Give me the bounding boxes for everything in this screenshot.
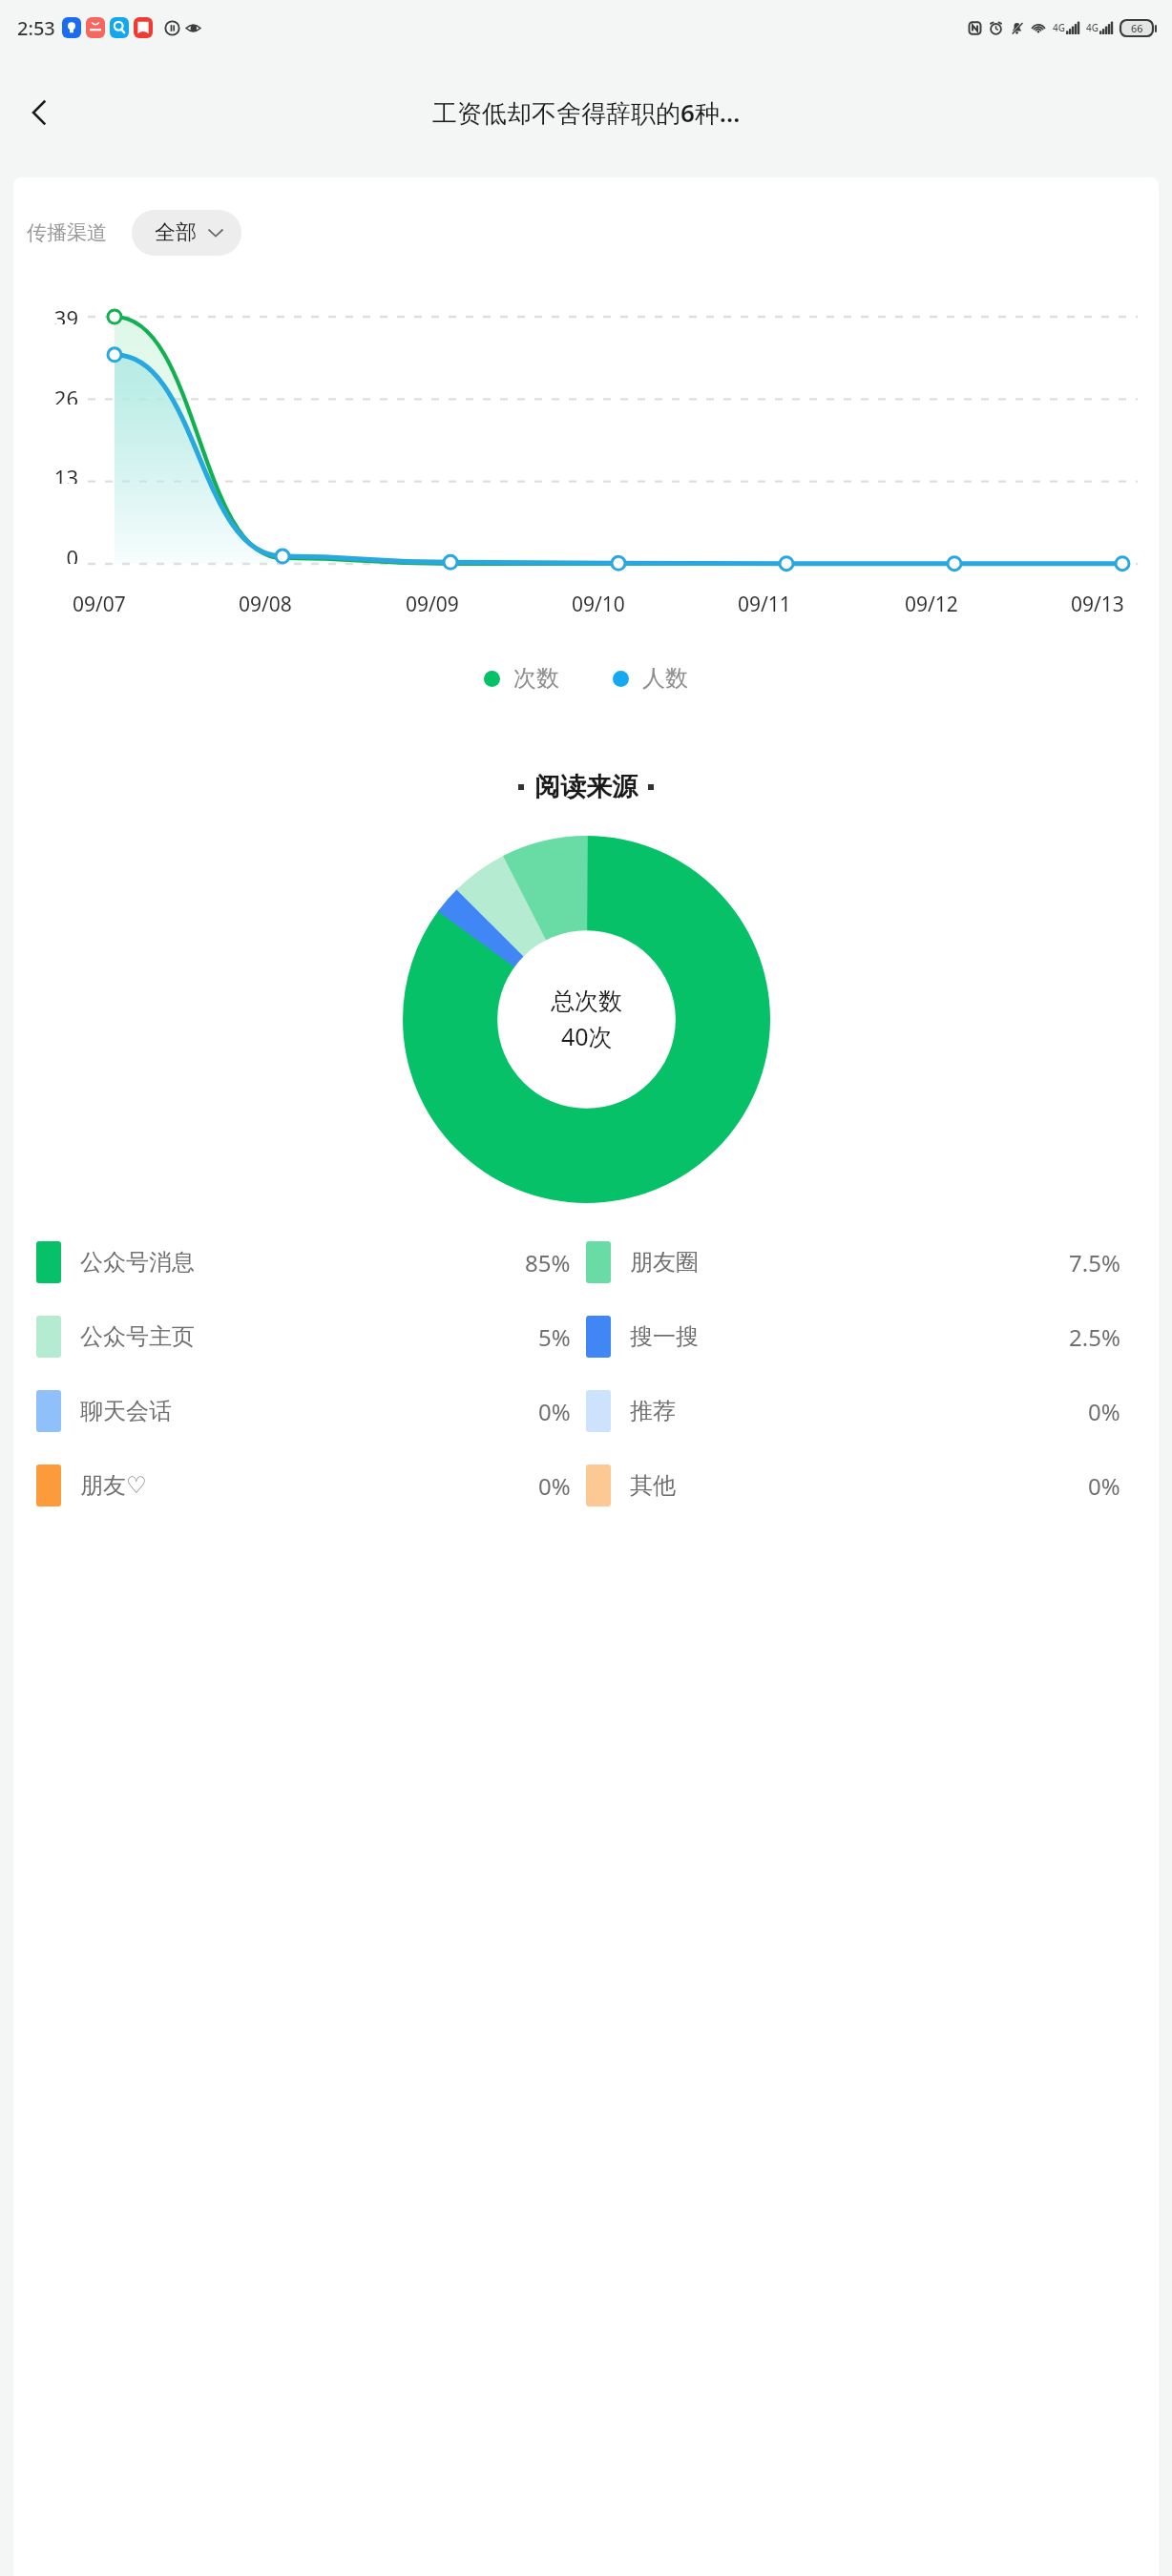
staticText: 聊天会话 xyxy=(80,1397,172,1425)
button[interactable]: 公众号消息 xyxy=(36,1241,586,1283)
button[interactable]: 搜一搜 xyxy=(586,1316,1136,1358)
staticText: 传播渠道 xyxy=(27,220,107,245)
staticText: 09/10 xyxy=(572,591,644,618)
staticText: 阅读来源 xyxy=(534,771,638,803)
staticText: 13 xyxy=(53,463,78,484)
staticText: 公众号主页 xyxy=(80,1322,195,1351)
staticText: 推荐 xyxy=(630,1397,676,1425)
staticText: 0% xyxy=(1088,1470,1120,1502)
staticText: 4G xyxy=(1053,21,1065,34)
staticText: 总次数 xyxy=(551,987,622,1016)
staticText: 全部 xyxy=(155,219,197,246)
staticText: 0% xyxy=(538,1470,571,1502)
staticText: 次数 xyxy=(513,664,559,693)
staticText: 39 xyxy=(53,303,78,324)
staticText: 26 xyxy=(53,384,78,405)
button[interactable]: 全部 xyxy=(132,210,241,256)
button[interactable]: 次数 xyxy=(480,660,563,696)
button[interactable]: 推荐 xyxy=(586,1390,1136,1432)
staticText: 85% xyxy=(525,1247,571,1278)
staticText: 09/09 xyxy=(406,591,478,618)
staticText: 朋友圈 xyxy=(630,1248,699,1277)
button[interactable]: 公众号主页 xyxy=(36,1316,586,1358)
staticText: 09/08 xyxy=(239,591,311,618)
staticText: 40次 xyxy=(561,1020,613,1052)
staticText: 人数 xyxy=(642,664,688,693)
staticText: 66 xyxy=(1131,21,1143,35)
staticText: 工资低却不舍得辞职的6种... xyxy=(432,95,741,130)
button[interactable]: 朋友♡ xyxy=(36,1465,586,1506)
button[interactable]: 返回 xyxy=(11,85,67,140)
staticText: 2:53 xyxy=(17,15,55,41)
staticText: 4G xyxy=(1086,21,1099,34)
staticText: 公众号消息 xyxy=(80,1248,195,1277)
button[interactable]: 聊天会话 xyxy=(36,1390,586,1432)
staticText: 09/12 xyxy=(905,591,977,618)
staticText: 09/11 xyxy=(738,591,810,618)
button[interactable]: 朋友圈 xyxy=(586,1241,1136,1283)
staticText: 5% xyxy=(538,1321,571,1353)
staticText: 0% xyxy=(1088,1396,1120,1427)
button[interactable]: 人数 xyxy=(609,660,692,696)
staticText: 0% xyxy=(538,1396,571,1427)
staticText: 0 xyxy=(66,543,78,564)
staticText: 搜一搜 xyxy=(630,1322,699,1351)
button[interactable]: 其他 xyxy=(586,1465,1136,1506)
staticText: 09/07 xyxy=(73,591,145,618)
staticText: 7.5% xyxy=(1069,1247,1120,1278)
staticText: 朋友♡ xyxy=(80,1471,147,1500)
staticText: 09/13 xyxy=(1071,591,1143,618)
staticText: 其他 xyxy=(630,1471,676,1500)
staticText: 2.5% xyxy=(1069,1321,1120,1353)
